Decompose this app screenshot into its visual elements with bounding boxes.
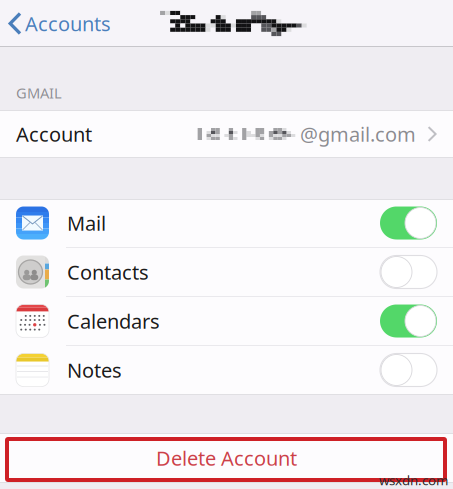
button[interactable]: Delete Account <box>0 433 453 483</box>
staticText: Calendars <box>67 308 160 334</box>
staticText: wsxdn.com <box>379 471 448 489</box>
staticText: Delete Account <box>156 445 297 471</box>
staticText: Notes <box>67 357 122 383</box>
button[interactable]: Account <box>0 110 453 158</box>
staticText: Contacts <box>67 259 149 285</box>
staticText: Accounts <box>25 10 111 37</box>
button[interactable]: Accounts <box>0 0 119 46</box>
staticText: @gmail.com <box>300 121 416 147</box>
staticText: Mail <box>67 210 106 236</box>
button[interactable]: Notes <box>0 346 453 395</box>
staticText: Account <box>16 121 92 147</box>
staticText: GMAIL <box>16 83 62 102</box>
button[interactable]: Contacts <box>0 248 453 297</box>
button[interactable]: Mail <box>0 199 453 248</box>
button[interactable]: Calendars <box>0 297 453 346</box>
